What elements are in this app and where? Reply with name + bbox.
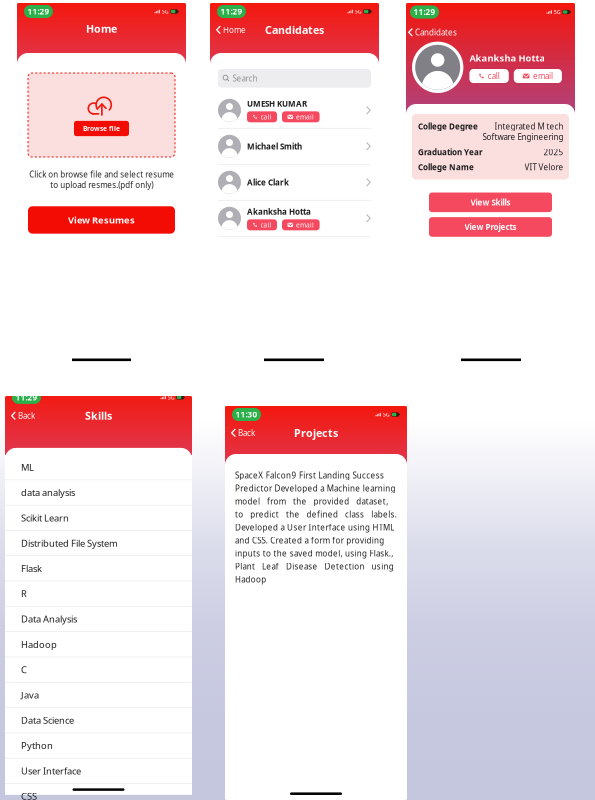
staticText: 11:29	[15, 392, 37, 403]
button[interactable]: Data Science	[5, 708, 192, 733]
button[interactable]: Michael Smith	[210, 129, 379, 165]
staticText: 5G	[168, 394, 175, 401]
staticText: Hadoop	[21, 638, 57, 650]
staticText: 5G	[162, 8, 169, 15]
button[interactable]: View Skills	[429, 192, 552, 212]
staticText: View Skills	[470, 197, 510, 208]
button[interactable]: C	[5, 657, 192, 683]
staticText: ML	[21, 461, 34, 473]
button[interactable]: email	[282, 219, 320, 230]
button[interactable]: Python	[5, 733, 192, 758]
staticText: 11:29	[220, 6, 242, 17]
staticText: Flask	[21, 562, 42, 575]
button[interactable]: Distributed File System	[5, 531, 192, 556]
staticText: Python	[21, 739, 53, 752]
button[interactable]: Back	[5, 407, 35, 424]
button[interactable]: Candidates	[403, 25, 457, 40]
staticText: email	[296, 112, 314, 121]
staticText: Alice Clark	[247, 177, 289, 188]
button[interactable]: User Interface	[5, 758, 192, 784]
button[interactable]: Java	[5, 683, 192, 708]
staticText: Projects	[294, 426, 338, 440]
staticText: Candidates	[415, 27, 457, 38]
staticText: 5G	[355, 8, 362, 15]
staticText: 11:30	[235, 409, 257, 420]
staticText: Scikit Learn	[21, 512, 69, 524]
button[interactable]: Back	[225, 424, 255, 441]
staticText: data analysis	[21, 486, 75, 499]
staticText: Data Analysis	[21, 613, 77, 625]
button[interactable]: Hadoop	[5, 632, 192, 657]
button[interactable]: Scikit Learn	[5, 505, 192, 531]
staticText: View Resumes	[68, 214, 135, 226]
button[interactable]: Akanksha Hotta	[210, 201, 379, 237]
staticText: email	[533, 71, 553, 81]
staticText: Akanksha Hotta	[469, 52, 545, 64]
button[interactable]: View Resumes	[28, 206, 175, 234]
button[interactable]: call	[469, 69, 509, 83]
staticText: call	[260, 220, 271, 229]
button[interactable]: Alice Clark	[210, 165, 379, 201]
staticText: Search	[232, 73, 257, 84]
staticText: VIT Velore	[524, 162, 563, 172]
staticText: Java	[21, 689, 39, 701]
staticText: email	[296, 220, 314, 229]
staticText: R	[21, 587, 27, 600]
button[interactable]: ML	[5, 455, 192, 480]
staticText: Distributed File System	[21, 537, 118, 549]
staticText: Home	[86, 21, 117, 36]
staticText: Home	[223, 24, 246, 35]
button[interactable]: Flask	[5, 556, 192, 581]
button[interactable]: UMESH KUMAR	[210, 93, 379, 129]
staticText: CSS	[21, 790, 37, 800]
staticText: C	[21, 663, 27, 676]
staticText: Data Science	[21, 714, 74, 726]
button[interactable]: Data Analysis	[5, 607, 192, 632]
button[interactable]: Home	[210, 21, 246, 38]
button[interactable]: data analysis	[5, 480, 192, 505]
staticText: Akanksha Hotta	[247, 206, 311, 217]
staticText: Michael Smith	[247, 141, 302, 152]
button[interactable]: email	[282, 111, 320, 122]
button[interactable]: View Projects	[429, 217, 552, 237]
staticText: College Degree	[418, 121, 478, 132]
staticText: View Projects	[464, 222, 516, 232]
staticText: 11:29	[413, 7, 435, 17]
staticText: SpaceX Falcon9 First Landing Success Pre…	[235, 470, 397, 585]
button[interactable]: call	[247, 219, 277, 230]
staticText: College Name	[418, 162, 474, 172]
staticText: 5G	[554, 8, 561, 16]
button[interactable]: email	[514, 69, 562, 83]
staticText: UMESH KUMAR	[247, 98, 307, 109]
staticText: Integrated M tech Software Engineering	[482, 121, 563, 142]
staticText: Skills	[85, 409, 112, 423]
staticText: 2025	[543, 147, 563, 157]
staticText: 11:29	[27, 6, 49, 17]
staticText: Browse file	[83, 124, 120, 133]
button[interactable]: call	[247, 111, 277, 122]
staticText: call	[260, 112, 271, 121]
staticText: Click on browse file and select resume t…	[29, 169, 174, 190]
staticText: User Interface	[21, 765, 81, 777]
staticText: Back	[238, 427, 255, 438]
staticText: Back	[18, 410, 35, 421]
button[interactable]: Browse file	[74, 121, 129, 136]
staticText: Graduation Year	[418, 147, 483, 157]
staticText: call	[488, 71, 500, 81]
button[interactable]: CSS	[5, 784, 192, 800]
button[interactable]: R	[5, 581, 192, 607]
staticText: Candidates	[265, 23, 324, 37]
staticText: 5G	[383, 411, 390, 418]
